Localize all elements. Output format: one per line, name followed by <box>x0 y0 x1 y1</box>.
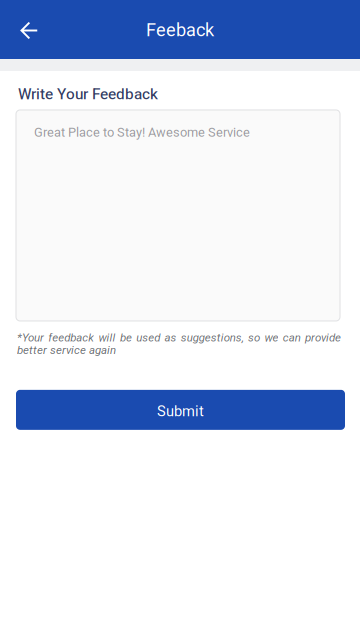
staticText: *Your <box>17 331 44 344</box>
button[interactable]: Back <box>0 9 47 49</box>
staticText: provide <box>305 331 341 344</box>
staticText: as <box>164 331 176 344</box>
staticText: better service again <box>17 343 116 357</box>
staticText: can <box>283 331 301 344</box>
staticText: Great Place to Stay! Awesome Service <box>34 125 250 140</box>
staticText: feedback <box>48 331 94 344</box>
staticText: Feeback <box>146 19 214 41</box>
staticText: so <box>248 331 260 344</box>
button[interactable]: Submit <box>16 390 345 430</box>
staticText: Submit <box>157 403 204 420</box>
staticText: will <box>99 331 116 344</box>
staticText: Write Your Feedback <box>18 85 158 103</box>
staticText: we <box>264 331 278 344</box>
staticText: be <box>120 331 132 344</box>
staticText: suggestions, <box>181 331 244 344</box>
staticText: used <box>136 331 160 344</box>
